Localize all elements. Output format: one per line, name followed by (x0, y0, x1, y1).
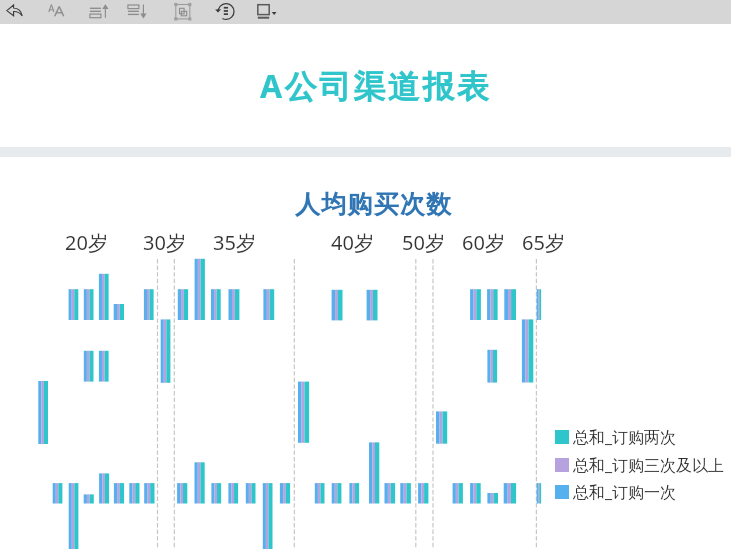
staticText: 35岁 (213, 229, 256, 256)
staticText: 人均购买次数 (295, 189, 453, 220)
button[interactable]: History (212, 0, 236, 24)
staticText: 总和_订购三次及以上 (573, 454, 725, 476)
button[interactable]: Font size (44, 0, 68, 24)
staticText: 50岁 (402, 229, 445, 256)
button[interactable]: 总和_订购两次 (555, 426, 677, 448)
button[interactable]: Sort ascending (86, 0, 110, 24)
staticText: 40岁 (331, 229, 374, 256)
button[interactable]: Presentation mode (254, 0, 280, 24)
staticText: 65岁 (522, 229, 565, 256)
button[interactable]: Undo (4, 0, 26, 24)
staticText: 总和_订购一次 (573, 481, 677, 503)
button[interactable]: Sort descending (124, 0, 148, 24)
staticText: A公司渠道报表 (260, 64, 491, 108)
button[interactable]: 总和_订购一次 (555, 481, 677, 503)
staticText: 60岁 (462, 229, 505, 256)
staticText: 总和_订购两次 (573, 426, 677, 448)
button[interactable]: Group (170, 0, 194, 24)
staticText: 30岁 (143, 229, 186, 256)
button[interactable]: 总和_订购三次及以上 (555, 454, 725, 476)
staticText: 20岁 (65, 229, 108, 256)
